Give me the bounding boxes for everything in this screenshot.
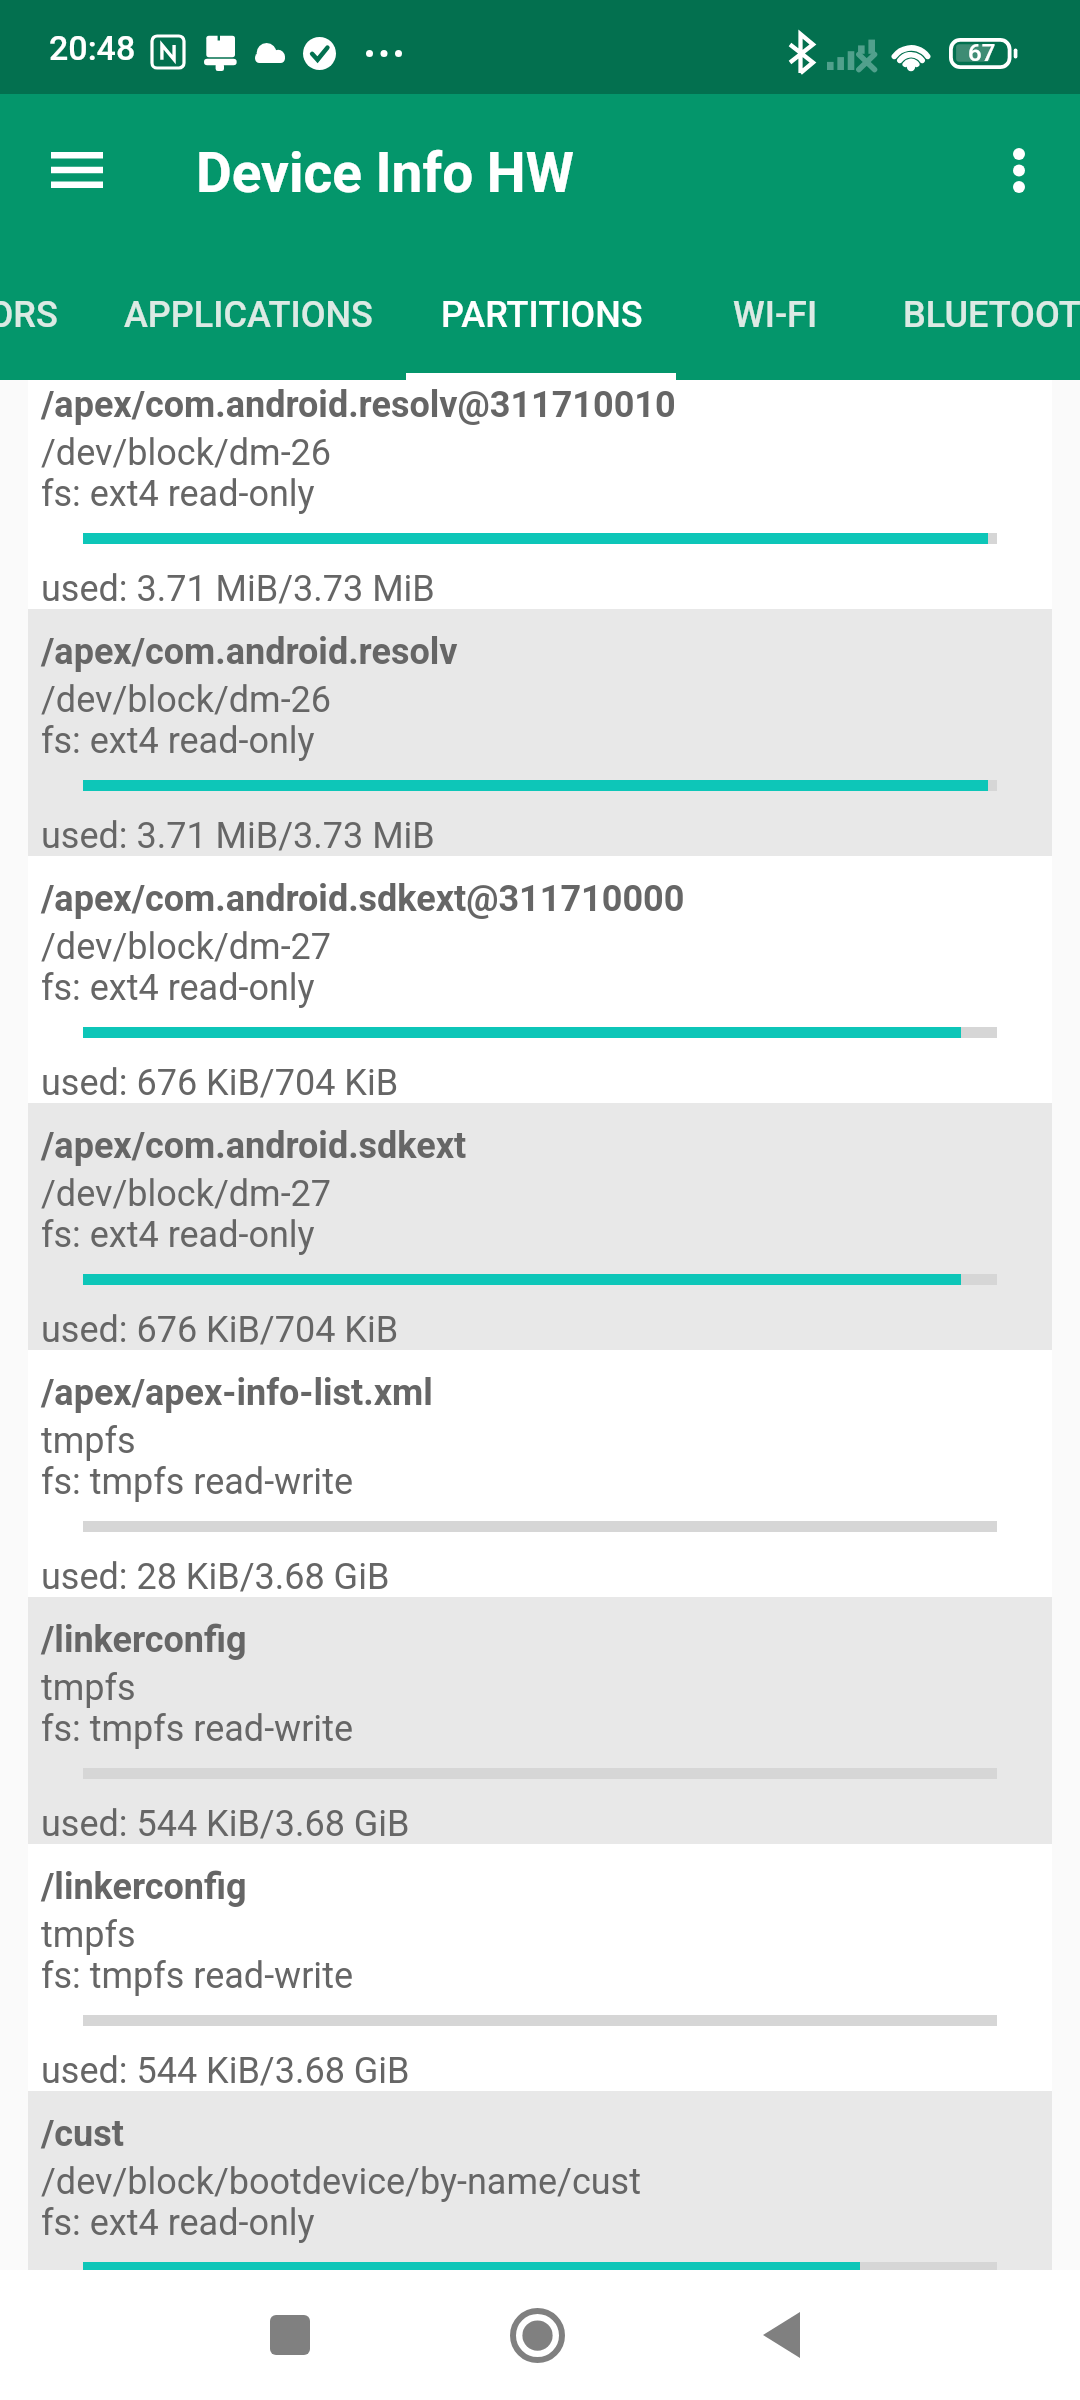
staticText: /apex/com.android.sdkext xyxy=(41,1125,467,1167)
button[interactable]: Recent apps xyxy=(250,2295,330,2375)
button[interactable]: Back xyxy=(741,2295,821,2375)
button[interactable]: /apex/com.android.sdkext@311710000 xyxy=(28,856,1052,1103)
staticText: APPLICATIONS xyxy=(124,294,373,336)
staticText: tmpfs xyxy=(41,1420,136,1462)
button[interactable]: /apex/com.android.sdkext xyxy=(28,1103,1052,1350)
staticText: 20:48 xyxy=(49,28,136,68)
staticText: fs: ext4 read-only xyxy=(41,720,315,762)
button[interactable]: BLUETOOTH xyxy=(874,258,1080,380)
staticText: tmpfs xyxy=(41,1914,136,1956)
staticText: /apex/com.android.resolv@311710010 xyxy=(41,384,676,426)
staticText: WI-FI xyxy=(733,294,818,336)
staticText: /apex/com.android.resolv xyxy=(41,631,458,673)
button[interactable]: WI-FI xyxy=(677,258,874,380)
staticText: fs: tmpfs read-write xyxy=(41,1708,353,1750)
staticText: used: 676 KiB/704 KiB xyxy=(41,1062,399,1103)
staticText: used: 3.71 MiB/3.73 MiB xyxy=(41,568,435,609)
button[interactable]: /apex/com.android.resolv xyxy=(28,609,1052,856)
button[interactable]: /apex/com.android.resolv@311710010 xyxy=(28,380,1052,609)
staticText: fs: ext4 read-only xyxy=(41,2202,315,2244)
staticText: /dev/block/dm-27 xyxy=(41,1173,332,1215)
staticText: SENSORS xyxy=(0,294,58,336)
button[interactable]: /cust xyxy=(28,2091,1052,2270)
button[interactable]: /linkerconfig xyxy=(28,1597,1052,1844)
staticText: fs: ext4 read-only xyxy=(41,967,315,1009)
staticText: /linkerconfig xyxy=(41,1866,247,1908)
staticText: 67 xyxy=(968,39,996,67)
staticText: /apex/apex-info-list.xml xyxy=(41,1372,433,1414)
staticText: fs: tmpfs read-write xyxy=(41,1461,353,1503)
staticText: used: 3.71 MiB/3.73 MiB xyxy=(41,815,435,856)
staticText: /dev/block/dm-27 xyxy=(41,926,332,968)
button[interactable]: /apex/apex-info-list.xml xyxy=(28,1350,1052,1597)
staticText: /dev/block/bootdevice/by-name/cust xyxy=(41,2161,641,2203)
staticText: fs: ext4 read-only xyxy=(41,473,315,515)
staticText: /dev/block/dm-26 xyxy=(41,432,332,474)
button[interactable]: APPLICATIONS xyxy=(90,258,407,380)
staticText: used: 676 KiB/704 KiB xyxy=(41,1309,399,1350)
button[interactable]: More options xyxy=(979,130,1059,210)
button[interactable]: /linkerconfig xyxy=(28,1844,1052,2091)
staticText: fs: ext4 read-only xyxy=(41,1214,315,1256)
staticText: /dev/block/dm-26 xyxy=(41,679,332,721)
staticText: used: 544 KiB/3.68 GiB xyxy=(41,1803,410,1844)
staticText: fs: tmpfs read-write xyxy=(41,1955,353,1997)
staticText: used: 28 KiB/3.68 GiB xyxy=(41,1556,390,1597)
button[interactable]: Home xyxy=(497,2295,577,2375)
staticText: Device Info HW xyxy=(196,141,574,205)
staticText: tmpfs xyxy=(41,1667,136,1709)
staticText: used: 544 KiB/3.68 GiB xyxy=(41,2050,410,2091)
staticText: /cust xyxy=(41,2113,124,2155)
staticText: /apex/com.android.sdkext@311710000 xyxy=(41,878,685,920)
staticText: BLUETOOTH xyxy=(903,294,1080,336)
staticText: /linkerconfig xyxy=(41,1619,247,1661)
button[interactable]: SENSORS xyxy=(0,258,90,380)
staticText: PARTITIONS xyxy=(441,294,643,336)
button[interactable]: PARTITIONS xyxy=(407,258,677,380)
button[interactable]: Open navigation drawer xyxy=(37,130,117,210)
